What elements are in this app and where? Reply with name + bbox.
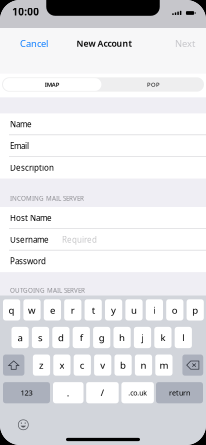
- button[interactable]: i: [146, 299, 163, 320]
- staticText: y: [111, 303, 116, 316]
- button[interactable]: y: [105, 299, 122, 320]
- staticText: a: [18, 331, 23, 344]
- button[interactable]: m: [155, 354, 172, 376]
- button[interactable]: return: [156, 382, 203, 403]
- button[interactable]: k: [154, 327, 171, 348]
- staticText: e: [50, 303, 55, 316]
- button[interactable]: a: [11, 327, 29, 348]
- staticText: t: [92, 303, 95, 316]
- staticText: New Account: [76, 37, 132, 49]
- button[interactable]: IMAP: [3, 78, 101, 91]
- button[interactable]: Delete: [182, 354, 203, 376]
- staticText: z: [39, 359, 44, 372]
- staticText: d: [58, 331, 64, 344]
- staticText: b: [120, 359, 126, 372]
- staticText: x: [59, 359, 64, 372]
- staticText: c: [80, 359, 85, 372]
- staticText: v: [100, 359, 105, 372]
- button[interactable]: e: [44, 299, 61, 320]
- staticText: .: [67, 386, 70, 399]
- staticText: Required: [62, 234, 97, 245]
- staticText: Password: [10, 256, 46, 267]
- button[interactable]: q: [3, 299, 20, 320]
- staticText: Cancel: [20, 37, 48, 50]
- button[interactable]: POP: [104, 78, 203, 91]
- button[interactable]: Shift: [3, 354, 24, 376]
- staticText: j: [141, 331, 143, 344]
- button[interactable]: d: [52, 327, 69, 348]
- staticText: q: [9, 303, 15, 316]
- button[interactable]: 123: [3, 382, 50, 403]
- button[interactable]: Next: [169, 33, 205, 53]
- staticText: .co.uk: [128, 388, 147, 397]
- button[interactable]: .: [53, 382, 83, 403]
- staticText: INCOMING MAIL SERVER: [10, 194, 84, 202]
- button[interactable]: c: [74, 354, 91, 376]
- staticText: l: [182, 331, 184, 344]
- button[interactable]: n: [135, 354, 152, 376]
- staticText: i: [153, 303, 155, 316]
- staticText: POP: [147, 80, 160, 88]
- staticText: s: [38, 331, 43, 344]
- staticText: IMAP: [45, 80, 60, 88]
- staticText: Host Name: [10, 212, 52, 223]
- button[interactable]: /: [86, 382, 119, 403]
- button[interactable]: p: [187, 299, 204, 320]
- button[interactable]: w: [23, 299, 41, 320]
- staticText: return: [169, 388, 190, 398]
- button[interactable]: g: [93, 327, 110, 348]
- staticText: r: [71, 303, 75, 316]
- staticText: Email: [10, 140, 29, 151]
- button[interactable]: j: [134, 327, 151, 348]
- staticText: u: [131, 303, 137, 316]
- button[interactable]: f: [73, 327, 90, 348]
- staticText: Next: [175, 37, 195, 50]
- staticText: p: [192, 303, 198, 316]
- button[interactable]: l: [175, 327, 192, 348]
- button[interactable]: s: [32, 327, 49, 348]
- button[interactable]: h: [113, 327, 131, 348]
- staticText: h: [119, 331, 125, 344]
- button[interactable]: z: [33, 354, 50, 376]
- button[interactable]: o: [166, 299, 183, 320]
- button[interactable]: v: [94, 354, 111, 376]
- staticText: g: [99, 331, 105, 344]
- staticText: Username: [10, 234, 49, 245]
- staticText: k: [160, 331, 165, 344]
- button[interactable]: x: [53, 354, 70, 376]
- staticText: OUTGOING MAIL SERVER: [10, 286, 85, 294]
- button[interactable]: Emoji keyboard: [17, 419, 29, 431]
- staticText: m: [159, 359, 168, 372]
- staticText: o: [172, 303, 178, 316]
- staticText: n: [140, 359, 146, 372]
- button[interactable]: .co.uk: [121, 382, 154, 403]
- staticText: Description: [10, 162, 54, 173]
- button[interactable]: u: [125, 299, 143, 320]
- button[interactable]: t: [85, 299, 102, 320]
- staticText: w: [28, 303, 36, 316]
- staticText: /: [100, 386, 104, 399]
- button[interactable]: Cancel: [10, 33, 52, 53]
- button[interactable]: r: [64, 299, 81, 320]
- staticText: f: [80, 331, 83, 344]
- staticText: 123: [20, 388, 32, 398]
- staticText: 10:00: [12, 5, 39, 18]
- button[interactable]: b: [114, 354, 132, 376]
- staticText: Name: [10, 119, 32, 130]
